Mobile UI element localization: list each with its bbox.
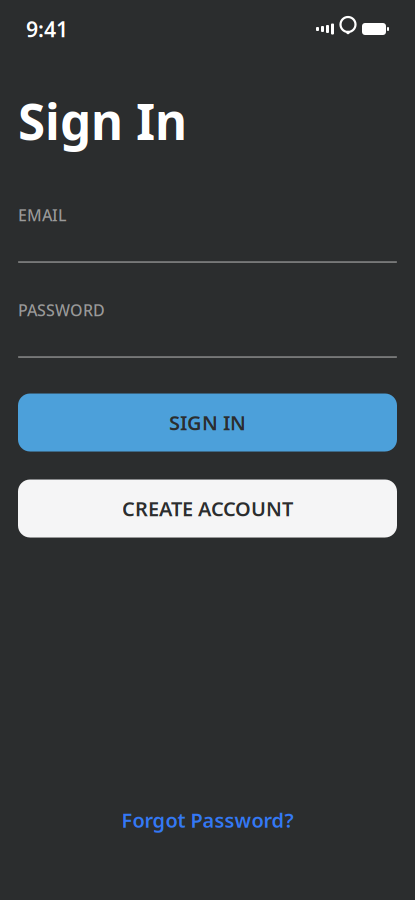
button[interactable]: Forgot Password? <box>18 805 397 835</box>
button[interactable]: CREATE ACCOUNT <box>18 479 397 537</box>
staticText: Sign In <box>18 88 187 153</box>
staticText: 9:41 <box>26 15 68 43</box>
staticText: PASSWORD <box>18 299 105 321</box>
staticText: CREATE ACCOUNT <box>122 495 293 522</box>
staticText: SIGN IN <box>169 409 246 436</box>
staticText: Forgot Password? <box>121 807 293 833</box>
button[interactable]: SIGN IN <box>18 393 397 451</box>
staticText: EMAIL <box>18 204 67 226</box>
